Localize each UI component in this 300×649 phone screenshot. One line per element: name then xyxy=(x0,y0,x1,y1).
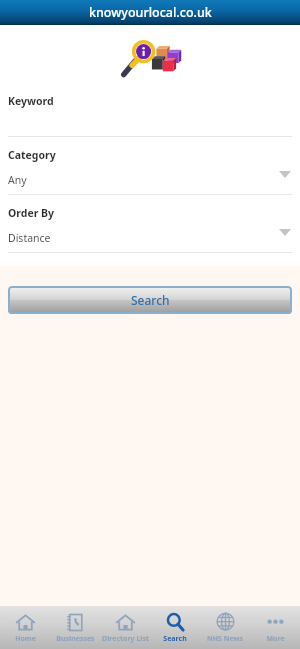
button[interactable]: Search xyxy=(8,286,292,314)
staticText: Search xyxy=(163,634,187,644)
other: More xyxy=(265,612,286,633)
other: Home xyxy=(115,612,136,633)
staticText: Home xyxy=(15,634,36,644)
other: Home xyxy=(15,612,36,633)
staticText: NHS News xyxy=(207,634,243,644)
staticText: Search xyxy=(131,292,170,308)
staticText: Order By xyxy=(8,206,55,220)
staticText: knowyourlocal.co.uk xyxy=(89,4,212,21)
staticText: Any xyxy=(8,173,27,187)
button[interactable]: NHS News xyxy=(200,606,250,649)
staticText: More xyxy=(266,634,285,644)
other: Businesses xyxy=(65,612,86,633)
staticText: Keyword xyxy=(8,94,54,108)
staticText: Distance xyxy=(8,231,51,245)
button[interactable]: Search xyxy=(150,606,200,649)
button[interactable]: Distance xyxy=(0,223,300,252)
staticText: Category xyxy=(8,148,56,162)
staticText: Businesses xyxy=(56,634,95,644)
staticText: Directory List xyxy=(102,634,149,644)
button[interactable]: Home xyxy=(0,606,50,649)
button[interactable]: Home xyxy=(100,606,150,649)
button[interactable]: Businesses xyxy=(50,606,100,649)
other: Search xyxy=(165,612,186,633)
button[interactable]: More xyxy=(250,606,300,649)
other: NHS News xyxy=(215,612,236,633)
button[interactable]: Any xyxy=(0,165,300,194)
